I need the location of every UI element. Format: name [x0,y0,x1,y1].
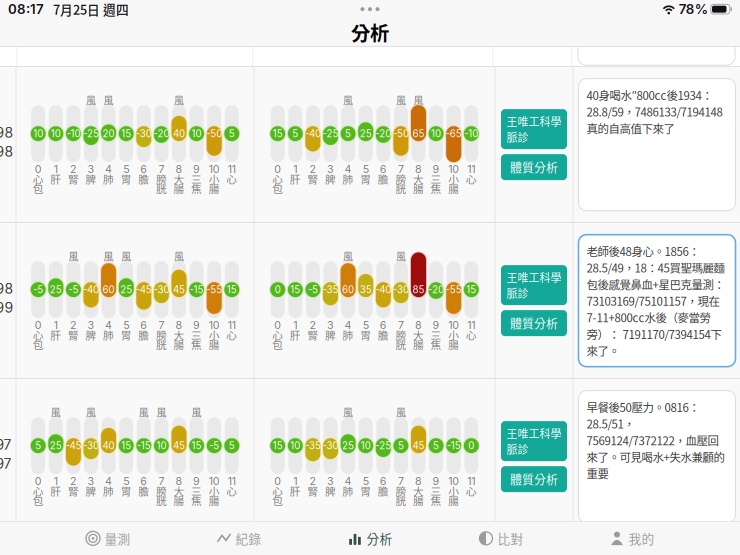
staticText: 7 [398,475,404,488]
staticText: 膽 [138,483,149,499]
staticText: 0 [468,440,474,452]
staticText: 肺 [343,483,354,499]
staticText: 膀 [395,171,406,187]
staticText: 40 [173,128,185,140]
staticText: 40 [103,440,115,452]
button[interactable]: 量測 [42,523,173,553]
staticText: 老師後48身心。1856：28.5/49，18：45買聖瑪麗麵包後感覺鼻血+星巴… [586,243,724,359]
staticText: 肺 [103,171,114,187]
staticText: 0 [274,475,281,488]
staticText: 王唯工科學脈診 [506,113,561,145]
staticText: 體質分析 [510,314,558,332]
button[interactable]: 分析 [304,523,435,553]
staticText: 25 [50,440,62,452]
staticText: -55 [206,284,222,296]
staticText: 15 [192,440,202,452]
button[interactable]: 紀錄 [173,523,304,553]
staticText: 6 [140,319,147,332]
staticText: 5 [363,319,369,332]
staticText: -25 [375,440,391,452]
staticText: 78% [679,1,708,17]
staticText: 5 [123,163,129,176]
staticText: 11 [228,319,236,332]
staticText: 5 [292,128,298,140]
staticText: 腸 [173,337,184,352]
staticText: 風 [104,249,114,263]
staticText: -25 [322,128,338,140]
staticText: 脾 [85,483,96,499]
staticText: 腸 [209,337,220,352]
staticText: 4 [345,163,352,176]
staticText: 王唯工科學脈診 [506,425,561,457]
staticText: 心 [226,327,237,343]
staticText: 我的 [628,529,654,547]
staticText: 風 [343,405,353,419]
staticText: 6 [380,475,387,488]
staticText: 腸 [413,337,424,352]
staticText: 風 [396,249,406,263]
staticText: 9 [193,163,200,176]
staticText: 膀 [156,171,167,187]
staticText: 3 [87,163,94,176]
staticText: 45 [173,284,185,296]
staticText: 肝 [290,171,301,187]
button[interactable]: 王唯工科學脈診 [501,265,567,305]
staticText: 5 [398,440,404,452]
staticText: 10 [51,128,61,140]
staticText: 肝 [50,483,61,499]
button[interactable]: 比對 [435,523,566,553]
staticText: 胱 [156,181,167,196]
staticText: 6 [140,475,147,488]
staticText: 肺 [103,483,114,499]
button[interactable]: 老師後48身心。1856：28.5/49，18：45買聖瑪麗麵包後感覺鼻血+星巴… [578,235,735,367]
staticText: 5 [123,475,129,488]
staticText: -5 [33,284,43,296]
staticText: -65 [446,128,462,140]
staticText: 15 [290,284,300,296]
staticText: 10 [156,440,166,452]
button[interactable]: 體質分析 [501,154,567,180]
staticText: -45 [136,284,152,296]
staticText: 心 [466,171,477,187]
staticText: 4 [105,475,112,488]
staticText: -5 [308,284,318,296]
staticText: 5 [345,128,351,140]
button[interactable]: 我的 [566,523,697,553]
staticText: 3 [327,163,334,176]
staticText: 膀 [156,327,167,343]
staticText: 2 [309,163,316,176]
staticText: 腸 [413,493,424,508]
staticText: 9 [193,319,200,332]
staticText: 風 [174,93,184,107]
staticText: 10 [33,128,43,140]
staticText: 腸 [173,493,184,508]
staticText: 心 [466,327,477,343]
staticText: 心 [272,171,283,187]
staticText: 心 [33,483,44,499]
staticText: 0 [35,163,42,176]
staticText: 胱 [156,337,167,352]
staticText: 胃 [360,327,371,343]
button[interactable]: 體質分析 [501,466,567,492]
staticText: 98 [0,124,13,141]
staticText: 膀 [156,483,167,499]
button[interactable]: 王唯工科學脈診 [501,109,567,149]
staticText: 風 [86,405,96,419]
staticText: 15 [273,440,283,452]
staticText: 三 [191,327,202,343]
staticText: -5 [68,284,78,296]
staticText: 10 [448,475,459,488]
button[interactable]: 王唯工科學脈診 [501,421,567,461]
staticText: 65 [412,128,424,140]
staticText: 大 [413,171,424,187]
button[interactable]: 40身喝水″800cc後1934：28.8/59，7486133/7194148… [578,79,735,211]
staticText: 5 [123,319,129,332]
staticText: 5 [433,440,439,452]
staticText: 3 [327,319,334,332]
button[interactable]: 體質分析 [501,310,567,336]
staticText: 胃 [121,483,132,499]
staticText: 包 [272,493,283,508]
staticText: 焦 [191,337,202,352]
button[interactable]: 早餐後50壓力。0816：28.5/51，7569124/7372122，血壓回… [578,391,735,523]
staticText: 7月25日 週四 [44,0,129,18]
